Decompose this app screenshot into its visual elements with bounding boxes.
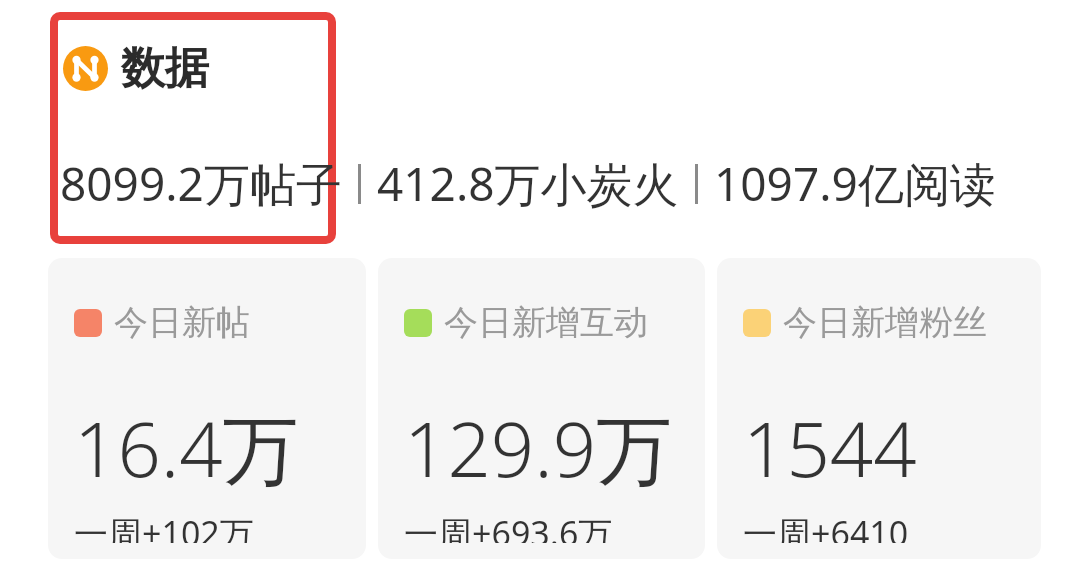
staticText: 412.8万小炭火 xyxy=(377,152,679,215)
button[interactable]: 今日新增粉丝 xyxy=(717,258,1041,559)
staticText: 8099.2万帖子 xyxy=(60,152,342,215)
staticText: 1097.9亿阅读 xyxy=(714,152,996,215)
staticText: 数据 xyxy=(121,41,209,96)
staticText: 1544 xyxy=(743,396,917,500)
staticText: 一周+6410 xyxy=(743,510,909,543)
staticText: 129.9万 xyxy=(404,396,673,500)
button[interactable]: 8099.2万帖子 xyxy=(60,152,996,215)
other: 品牌标识 xyxy=(63,46,108,91)
staticText: 今日新增粉丝 xyxy=(783,301,987,344)
button[interactable]: 品牌标识 xyxy=(63,41,209,96)
staticText: 今日新增互动 xyxy=(444,301,648,344)
button[interactable]: 今日新增互动 xyxy=(378,258,705,559)
staticText: 一周+102万 xyxy=(74,510,254,543)
staticText: 今日新帖 xyxy=(114,301,250,344)
staticText: 16.4万 xyxy=(74,396,299,500)
staticText: 一周+693.6万 xyxy=(404,510,613,543)
button[interactable]: 今日新帖 xyxy=(48,258,366,559)
